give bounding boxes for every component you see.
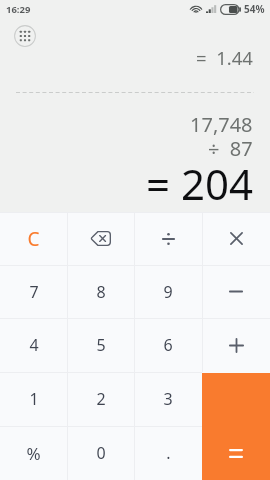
button[interactable]: 4 (0, 318, 67, 372)
button[interactable]: % (0, 426, 67, 480)
button[interactable]: 5 (67, 318, 134, 372)
button[interactable]: Unit converter (13, 24, 37, 48)
button[interactable]: C (0, 212, 67, 265)
button[interactable]: 2 (67, 372, 134, 426)
button[interactable]: Plus (202, 318, 270, 372)
staticText: 0 (96, 442, 106, 464)
button[interactable]: 8 (67, 265, 134, 318)
button[interactable]: . (134, 426, 202, 480)
staticText: 17,748 (190, 111, 253, 138)
button[interactable]: Multiply (202, 212, 270, 265)
button[interactable]: Divide (134, 212, 202, 265)
button[interactable]: 1 (0, 372, 67, 426)
staticText: 2 (96, 388, 106, 410)
staticText: 3 (163, 388, 173, 410)
button[interactable]: 7 (0, 265, 67, 318)
staticText: 7 (29, 281, 39, 303)
staticText: 1 (29, 388, 39, 410)
staticText: = 204 (146, 155, 254, 212)
staticText: . (166, 442, 171, 464)
staticText: 5 (96, 334, 106, 356)
button[interactable]: 0 (67, 426, 134, 480)
staticText: = 1.44 (196, 45, 253, 70)
staticText: % (26, 442, 41, 465)
button[interactable]: 3 (134, 372, 202, 426)
button[interactable]: 9 (134, 265, 202, 318)
button[interactable]: Equals (202, 373, 270, 480)
staticText: 9 (163, 281, 173, 303)
staticText: C (27, 226, 40, 252)
button[interactable]: 6 (134, 318, 202, 372)
staticText: 8 (96, 281, 106, 303)
staticText: 54% (244, 2, 265, 16)
staticText: ÷ 87 (208, 135, 253, 162)
button[interactable]: Backspace (67, 212, 134, 265)
staticText: 16:29 (6, 3, 31, 16)
button[interactable]: Minus (202, 265, 270, 318)
staticText: 4 (29, 334, 39, 356)
staticText: 6 (163, 334, 173, 356)
